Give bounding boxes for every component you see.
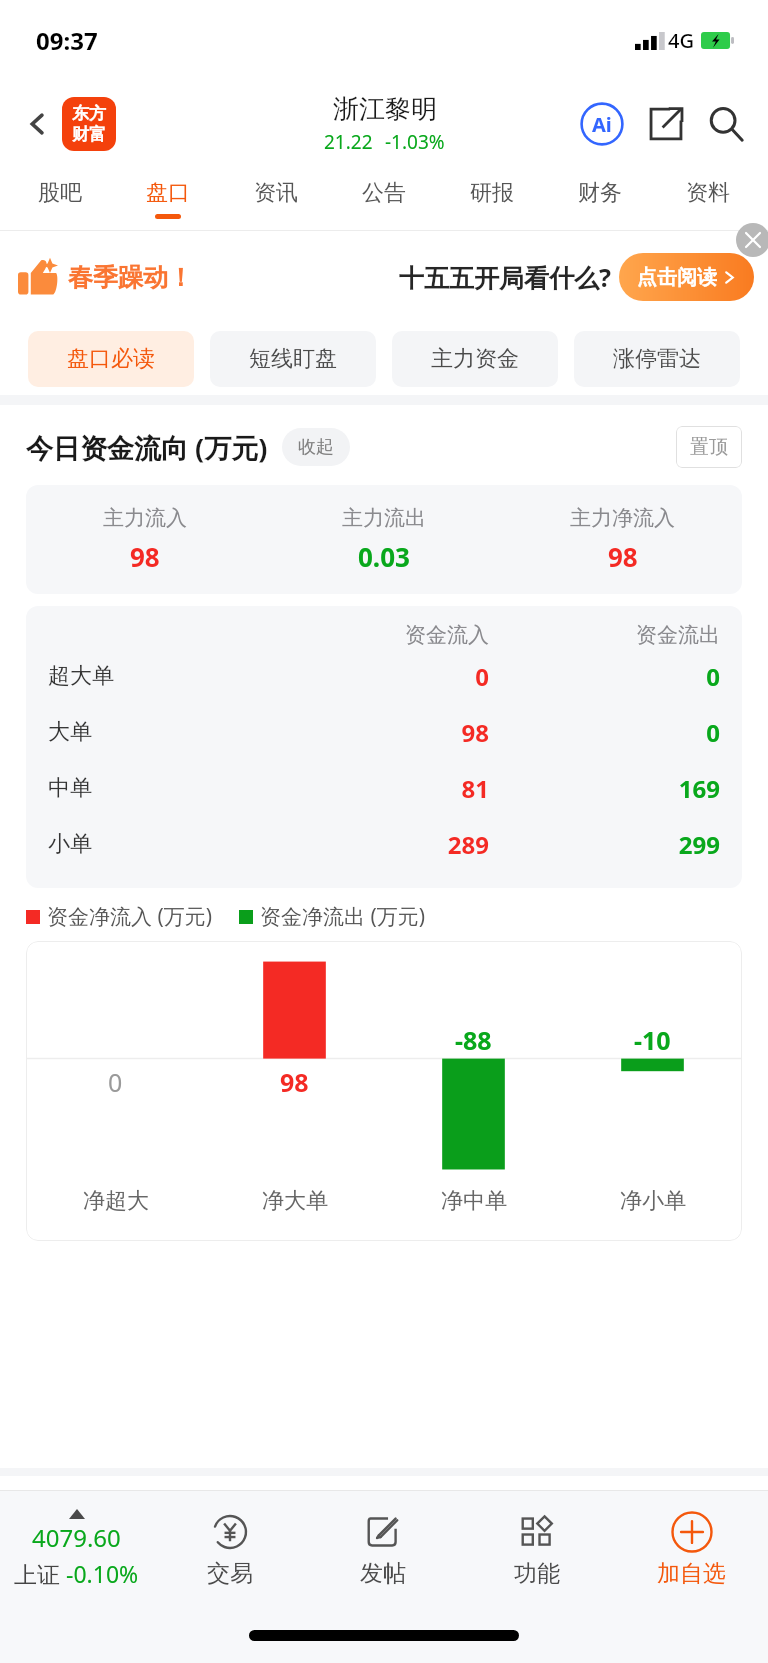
button[interactable]: 置顶 (676, 426, 742, 468)
staticText: -88 (455, 1023, 492, 1057)
button[interactable]: 发帖 (306, 1491, 460, 1607)
button[interactable]: 功能 (460, 1491, 614, 1607)
staticText: 资料 (686, 179, 730, 207)
button[interactable]: 资讯 (222, 168, 330, 230)
button[interactable]: 公告 (330, 168, 438, 230)
staticText: 资讯 (254, 179, 298, 207)
staticText: 净大单 (262, 1187, 328, 1215)
button[interactable]: 财务 (546, 168, 654, 230)
button[interactable]: 资金流入 (26, 606, 742, 888)
staticText: 169 (489, 772, 720, 805)
staticText: 0 (489, 660, 720, 693)
staticText: 主力流入 (103, 505, 187, 531)
staticText: 资金净流出 (万元) (260, 902, 426, 931)
staticText: 主力流出 (342, 505, 426, 531)
staticText: 春季躁动！ (68, 262, 193, 293)
staticText: 主力净流入 (570, 505, 675, 531)
button[interactable]: 研报 (438, 168, 546, 230)
staticText: 大单 (48, 718, 258, 746)
staticText: 资金流入 (258, 622, 489, 648)
staticText: -1.03% (385, 129, 445, 155)
staticText: 资金流出 (489, 622, 720, 648)
staticText: 98 (130, 539, 160, 574)
staticText: 21.22 (324, 129, 373, 155)
staticText: 净超大 (83, 1187, 149, 1215)
button[interactable]: Close (736, 223, 768, 257)
staticText: 净中单 (441, 1187, 507, 1215)
staticText: 0 (489, 716, 720, 749)
button[interactable]: 4079.60 (0, 1491, 153, 1607)
staticText: 4079.60 (32, 1521, 121, 1554)
staticText: -0.10% (66, 1558, 139, 1589)
staticText: 财富 (72, 124, 106, 145)
button[interactable]: 点击阅读 (619, 253, 754, 301)
button[interactable]: 交易 (153, 1491, 306, 1607)
staticText: 0.03 (358, 539, 410, 574)
button[interactable]: 短线盯盘 (210, 331, 376, 387)
staticText: 09:37 (36, 24, 98, 57)
button[interactable]: 0 (26, 941, 742, 1241)
staticText: 东方 (72, 103, 106, 124)
button[interactable]: 主力资金 (392, 331, 558, 387)
button[interactable]: 盘口 (114, 168, 222, 230)
staticText: 净小单 (620, 1187, 686, 1215)
staticText: 公告 (362, 179, 406, 207)
button[interactable]: East Money (62, 97, 116, 151)
staticText: 上证 (14, 1558, 66, 1589)
button[interactable]: AI (576, 98, 628, 150)
staticText: 主力资金 (431, 345, 519, 373)
staticText: 超大单 (48, 662, 258, 690)
staticText: 加自选 (657, 1559, 726, 1588)
staticText: 盘口 (146, 179, 190, 207)
button[interactable]: Search (700, 98, 752, 150)
staticText: 98 (258, 716, 489, 749)
staticText: 资金净流入 (万元) (47, 902, 213, 931)
staticText: 98 (280, 1065, 309, 1099)
staticText: 中单 (48, 774, 258, 802)
staticText: 股吧 (38, 179, 82, 207)
button[interactable]: 涨停雷达 (574, 331, 740, 387)
staticText: 4G (668, 27, 694, 54)
staticText: 浙江黎明 (333, 93, 437, 126)
staticText: 289 (258, 828, 489, 861)
button[interactable]: 盘口必读 (28, 331, 194, 387)
staticText: 收起 (298, 436, 334, 459)
staticText: 98 (608, 539, 638, 574)
staticText: 涨停雷达 (613, 345, 701, 373)
staticText: 今日资金流向 (万元) (26, 429, 268, 466)
staticText: 299 (489, 828, 720, 861)
staticText: 点击阅读 (637, 265, 717, 290)
staticText: 财务 (578, 179, 622, 207)
button[interactable]: 加自选 (614, 1491, 768, 1607)
staticText: 发帖 (360, 1559, 406, 1588)
staticText: 81 (258, 772, 489, 805)
button[interactable]: 收起 (282, 428, 350, 466)
staticText: 研报 (470, 179, 514, 207)
button[interactable]: 资料 (654, 168, 762, 230)
staticText: 0 (108, 1065, 123, 1099)
button[interactable]: Back (16, 102, 60, 146)
staticText: 0 (258, 660, 489, 693)
staticText: 十五五开局看什么? (399, 260, 611, 294)
staticText: Ai (592, 111, 612, 138)
staticText: 功能 (514, 1559, 560, 1588)
staticText: 短线盯盘 (249, 345, 337, 373)
staticText: -10 (634, 1023, 671, 1057)
staticText: 置顶 (690, 435, 728, 459)
staticText: 交易 (207, 1559, 253, 1588)
button[interactable]: Share (640, 98, 692, 150)
button[interactable]: 股吧 (6, 168, 114, 230)
button[interactable]: 主力流入 (26, 485, 742, 594)
staticText: 小单 (48, 830, 258, 858)
staticText: 盘口必读 (67, 345, 155, 373)
